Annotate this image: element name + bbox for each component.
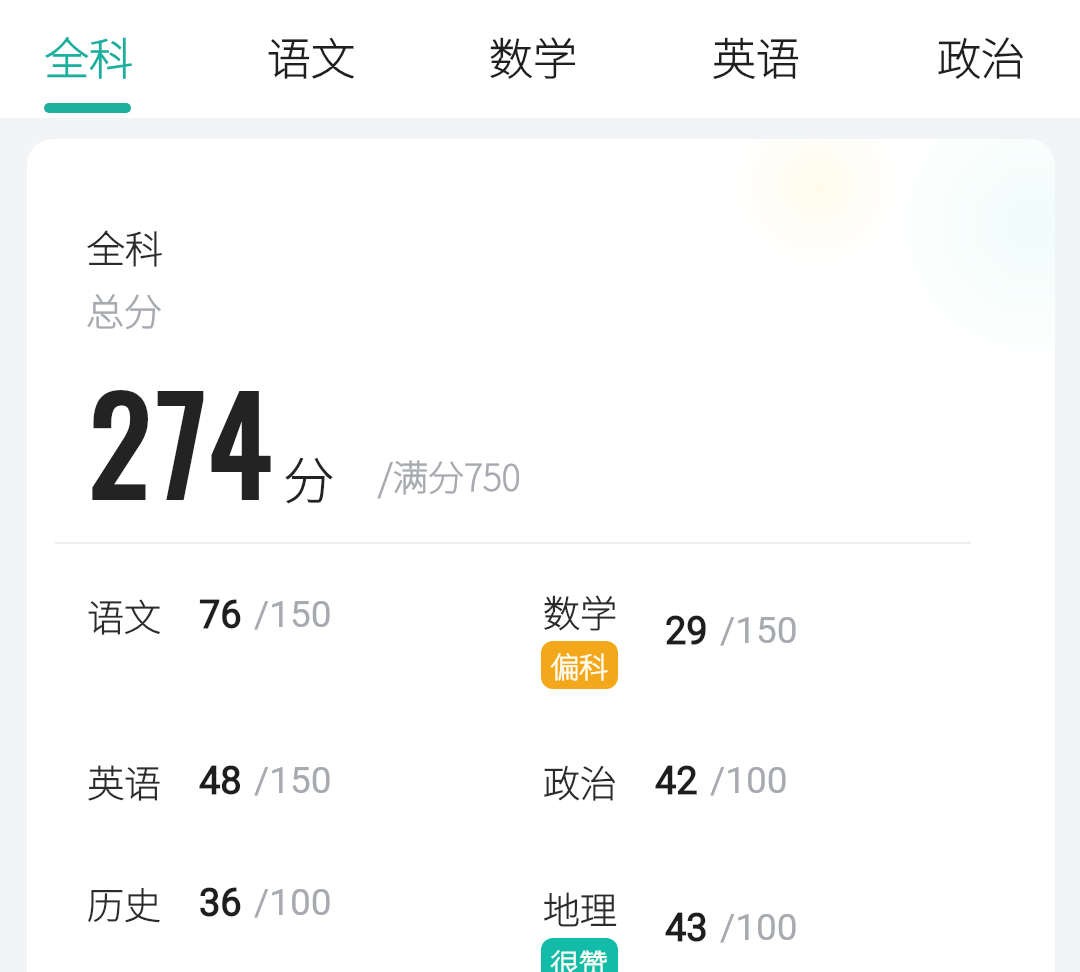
staticText: 地理 (543, 881, 617, 935)
button[interactable]: 英语 (648, 0, 864, 118)
staticText: /满分750 (378, 449, 521, 501)
staticText: /100 (254, 881, 332, 924)
staticText: 76 (199, 593, 242, 638)
button[interactable]: 历史 (87, 876, 417, 972)
staticText: 全科 (45, 24, 133, 88)
staticText: 274 (89, 344, 277, 535)
button[interactable]: 数学 (425, 0, 641, 118)
staticText: 偏科 (550, 644, 609, 686)
staticText: 数学 (543, 584, 617, 638)
staticText: 政治 (543, 754, 617, 808)
staticText: 英语 (712, 24, 800, 88)
staticText: 43 (665, 906, 708, 951)
staticText: 历史 (87, 876, 161, 930)
staticText: /150 (254, 593, 332, 636)
staticText: 36 (199, 881, 242, 926)
staticText: 语文 (87, 588, 161, 642)
staticText: 分 (284, 441, 334, 513)
staticText: 42 (655, 759, 698, 804)
staticText: 语文 (267, 24, 355, 88)
staticText: /150 (254, 759, 332, 802)
staticText: 29 (665, 609, 708, 654)
button[interactable]: 语文 (87, 588, 417, 693)
staticText: 总分 (86, 282, 163, 337)
staticText: 48 (199, 759, 242, 804)
button[interactable]: 政治 (873, 0, 1080, 118)
staticText: 很赞 (550, 941, 609, 972)
staticText: 数学 (489, 24, 577, 88)
staticText: /100 (720, 906, 798, 949)
button[interactable]: 全科 (0, 0, 197, 118)
button[interactable]: 英语 (87, 754, 417, 859)
button[interactable]: 语文 (203, 0, 419, 118)
staticText: /100 (710, 759, 788, 802)
staticText: /150 (720, 609, 798, 652)
button[interactable]: 数学 (543, 584, 873, 689)
button[interactable]: 政治 (543, 754, 873, 859)
staticText: 全科 (87, 219, 164, 274)
staticText: 政治 (937, 24, 1025, 88)
button[interactable]: 地理 (543, 881, 873, 972)
staticText: 英语 (87, 754, 161, 808)
